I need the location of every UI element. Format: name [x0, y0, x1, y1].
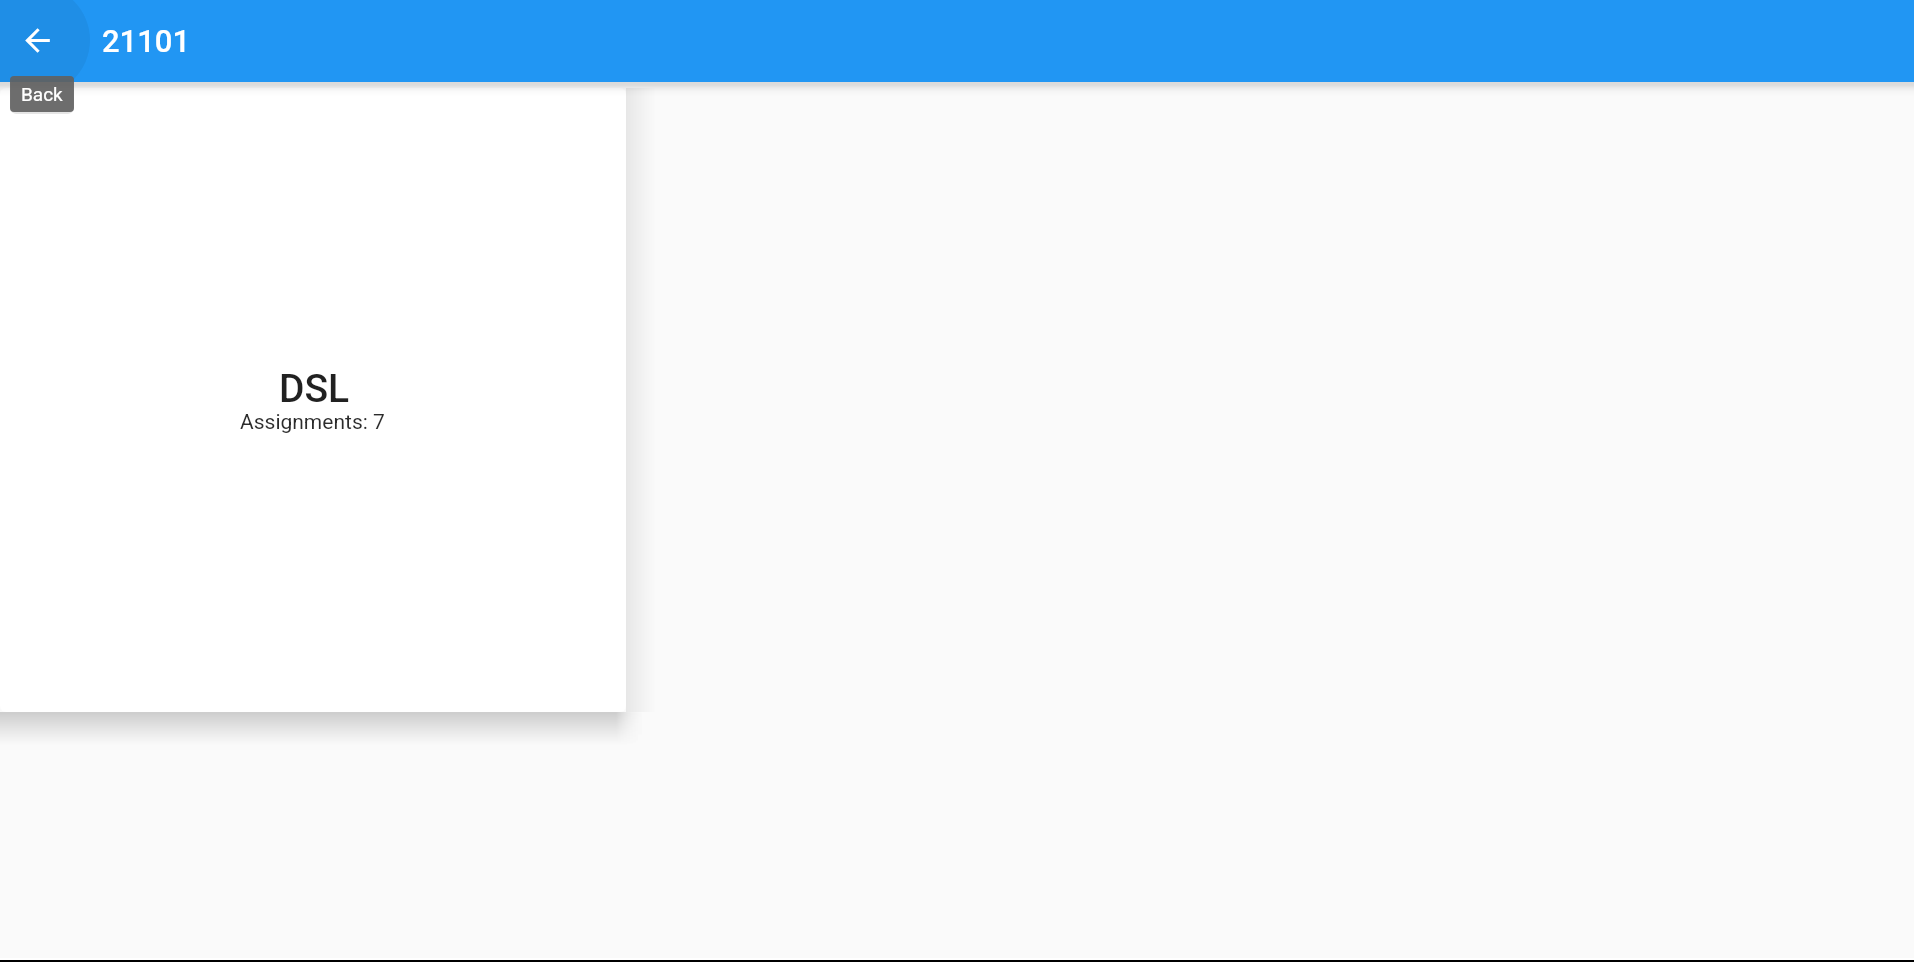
staticText: Assignments: 7	[240, 410, 385, 435]
staticText: 21101	[102, 23, 191, 59]
staticText: DSL	[279, 366, 350, 412]
button[interactable]: Back	[0, 0, 90, 82]
button[interactable]: DSL	[0, 88, 626, 712]
staticText: Back	[21, 83, 63, 105]
